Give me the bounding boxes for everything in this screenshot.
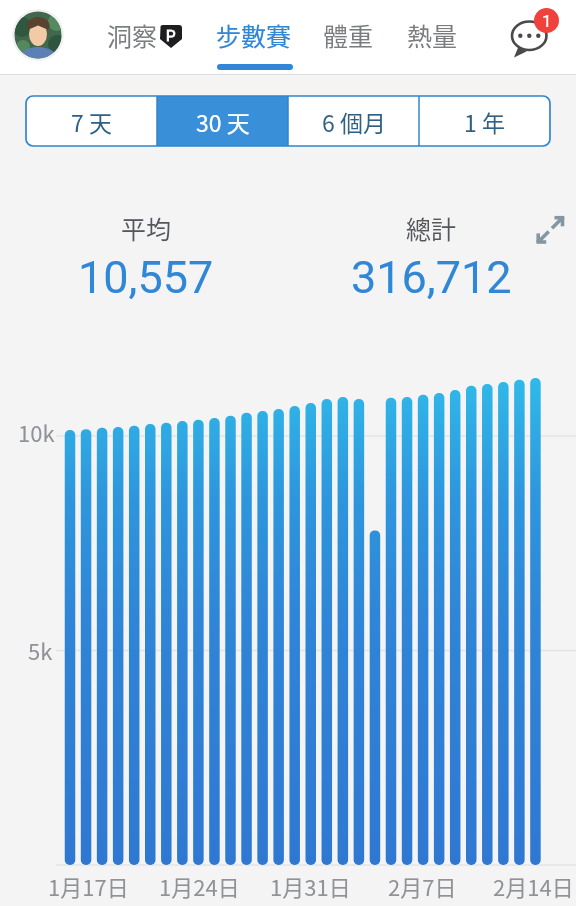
staticText: 熱量 [407,17,458,53]
staticText: 2月7日 [388,870,457,902]
staticText: 5k [28,634,53,666]
staticText: 1 [542,11,552,31]
staticText: 6 個月 [322,105,386,138]
staticText: 總計 [406,210,457,246]
button[interactable] [532,212,566,246]
staticText: 1 年 [464,105,505,138]
staticText: 1月17日 [48,870,129,902]
staticText: 洞察 [107,17,158,53]
staticText: 1月31日 [270,870,351,902]
button[interactable]: 洞察 [87,7,177,63]
staticText: 步數賽 [216,17,292,53]
button[interactable]: 熱量 [387,7,477,63]
button[interactable]: 1 [504,6,564,62]
staticText: 30 天 [196,105,250,138]
staticText: 10k [18,416,55,448]
staticText: P [166,27,176,45]
staticText: 體重 [323,17,374,53]
staticText: 316,712 [351,251,512,304]
button[interactable]: 6 個月 [288,96,419,146]
button[interactable]: 30 天 [157,96,288,146]
button[interactable]: 體重 [303,7,393,63]
button[interactable]: 1 年 [419,96,550,146]
button[interactable] [12,9,64,61]
button[interactable]: 步數賽 [199,7,309,63]
staticText: 10,557 [78,251,214,304]
staticText: 1月24日 [159,870,240,902]
staticText: 2月14日 [493,870,574,902]
staticText: 平均 [121,210,172,246]
staticText: 7 天 [71,105,112,138]
button[interactable]: 7 天 [26,96,157,146]
